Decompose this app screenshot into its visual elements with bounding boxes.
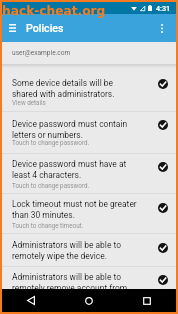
button[interactable]: Administrators will be able to remotely …	[2, 234, 176, 267]
button[interactable]: More options	[152, 14, 172, 42]
staticText: Touch to change timeout.	[12, 222, 139, 229]
button[interactable]: Device password must contain letters or …	[2, 112, 176, 154]
button[interactable]: Device password must have at least 4 cha…	[2, 154, 176, 194]
button[interactable]: Lock timeout must not be greater than 30…	[2, 194, 176, 234]
button[interactable]: Open navigation drawer	[2, 14, 22, 42]
staticText: Touch to change password.	[12, 139, 139, 146]
staticText: View details	[12, 99, 139, 106]
staticText: 4:31	[156, 4, 171, 12]
button[interactable]: Some device details will be shared with …	[2, 64, 176, 112]
button[interactable]: Back	[2, 289, 60, 312]
staticText: Policies	[26, 22, 64, 34]
button[interactable]: Administrators will be able to remotely …	[2, 267, 176, 289]
staticText: Device password must have at least 4 cha…	[12, 159, 139, 180]
staticText: Device password must contain letters or …	[12, 119, 139, 140]
button[interactable]: Home	[60, 289, 118, 312]
staticText: user@example.com	[12, 49, 71, 57]
staticText: hack-cheat.org	[2, 4, 106, 18]
staticText: Touch to change password.	[12, 182, 139, 189]
staticText: Some device details will be shared with …	[12, 78, 139, 99]
staticText: Lock timeout must not be greater than 30…	[12, 199, 139, 220]
staticText: Administrators will be able to remotely …	[12, 240, 139, 261]
button[interactable]: Recent apps	[118, 289, 176, 312]
staticText: Administrators will be able to remotely …	[12, 272, 139, 289]
